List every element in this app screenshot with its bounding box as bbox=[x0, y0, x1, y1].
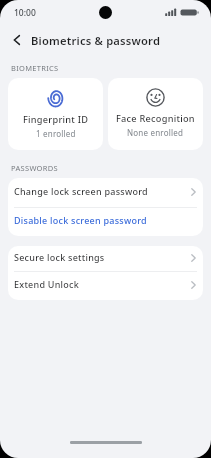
button[interactable]: Disable lock screen password bbox=[8, 208, 203, 236]
staticText: 10:00 bbox=[14, 7, 36, 19]
staticText: Fingerprint ID bbox=[23, 113, 89, 126]
button[interactable]: Face Recognition bbox=[108, 78, 203, 150]
staticText: Biometrics & password bbox=[31, 33, 161, 48]
button[interactable]: Biometrics & password bbox=[0, 26, 211, 56]
button[interactable] bbox=[13, 35, 21, 45]
staticText: Disable lock screen password bbox=[14, 214, 147, 226]
button[interactable]: Change lock screen password bbox=[8, 178, 203, 207]
staticText: Extend Unlock bbox=[14, 278, 79, 290]
staticText: None enrolled bbox=[127, 127, 184, 138]
staticText: 1 enrolled bbox=[36, 128, 76, 139]
staticText: PASSWORDS bbox=[11, 163, 58, 173]
button[interactable]: Fingerprint ID bbox=[8, 78, 103, 150]
staticText: Secure lock settings bbox=[14, 251, 105, 263]
button[interactable]: Secure lock settings bbox=[8, 246, 203, 271]
staticText: BIOMETRICS bbox=[11, 63, 59, 73]
button[interactable]: Extend Unlock bbox=[8, 272, 203, 300]
staticText: Face Recognition bbox=[116, 112, 195, 125]
staticText: Change lock screen password bbox=[14, 185, 148, 197]
